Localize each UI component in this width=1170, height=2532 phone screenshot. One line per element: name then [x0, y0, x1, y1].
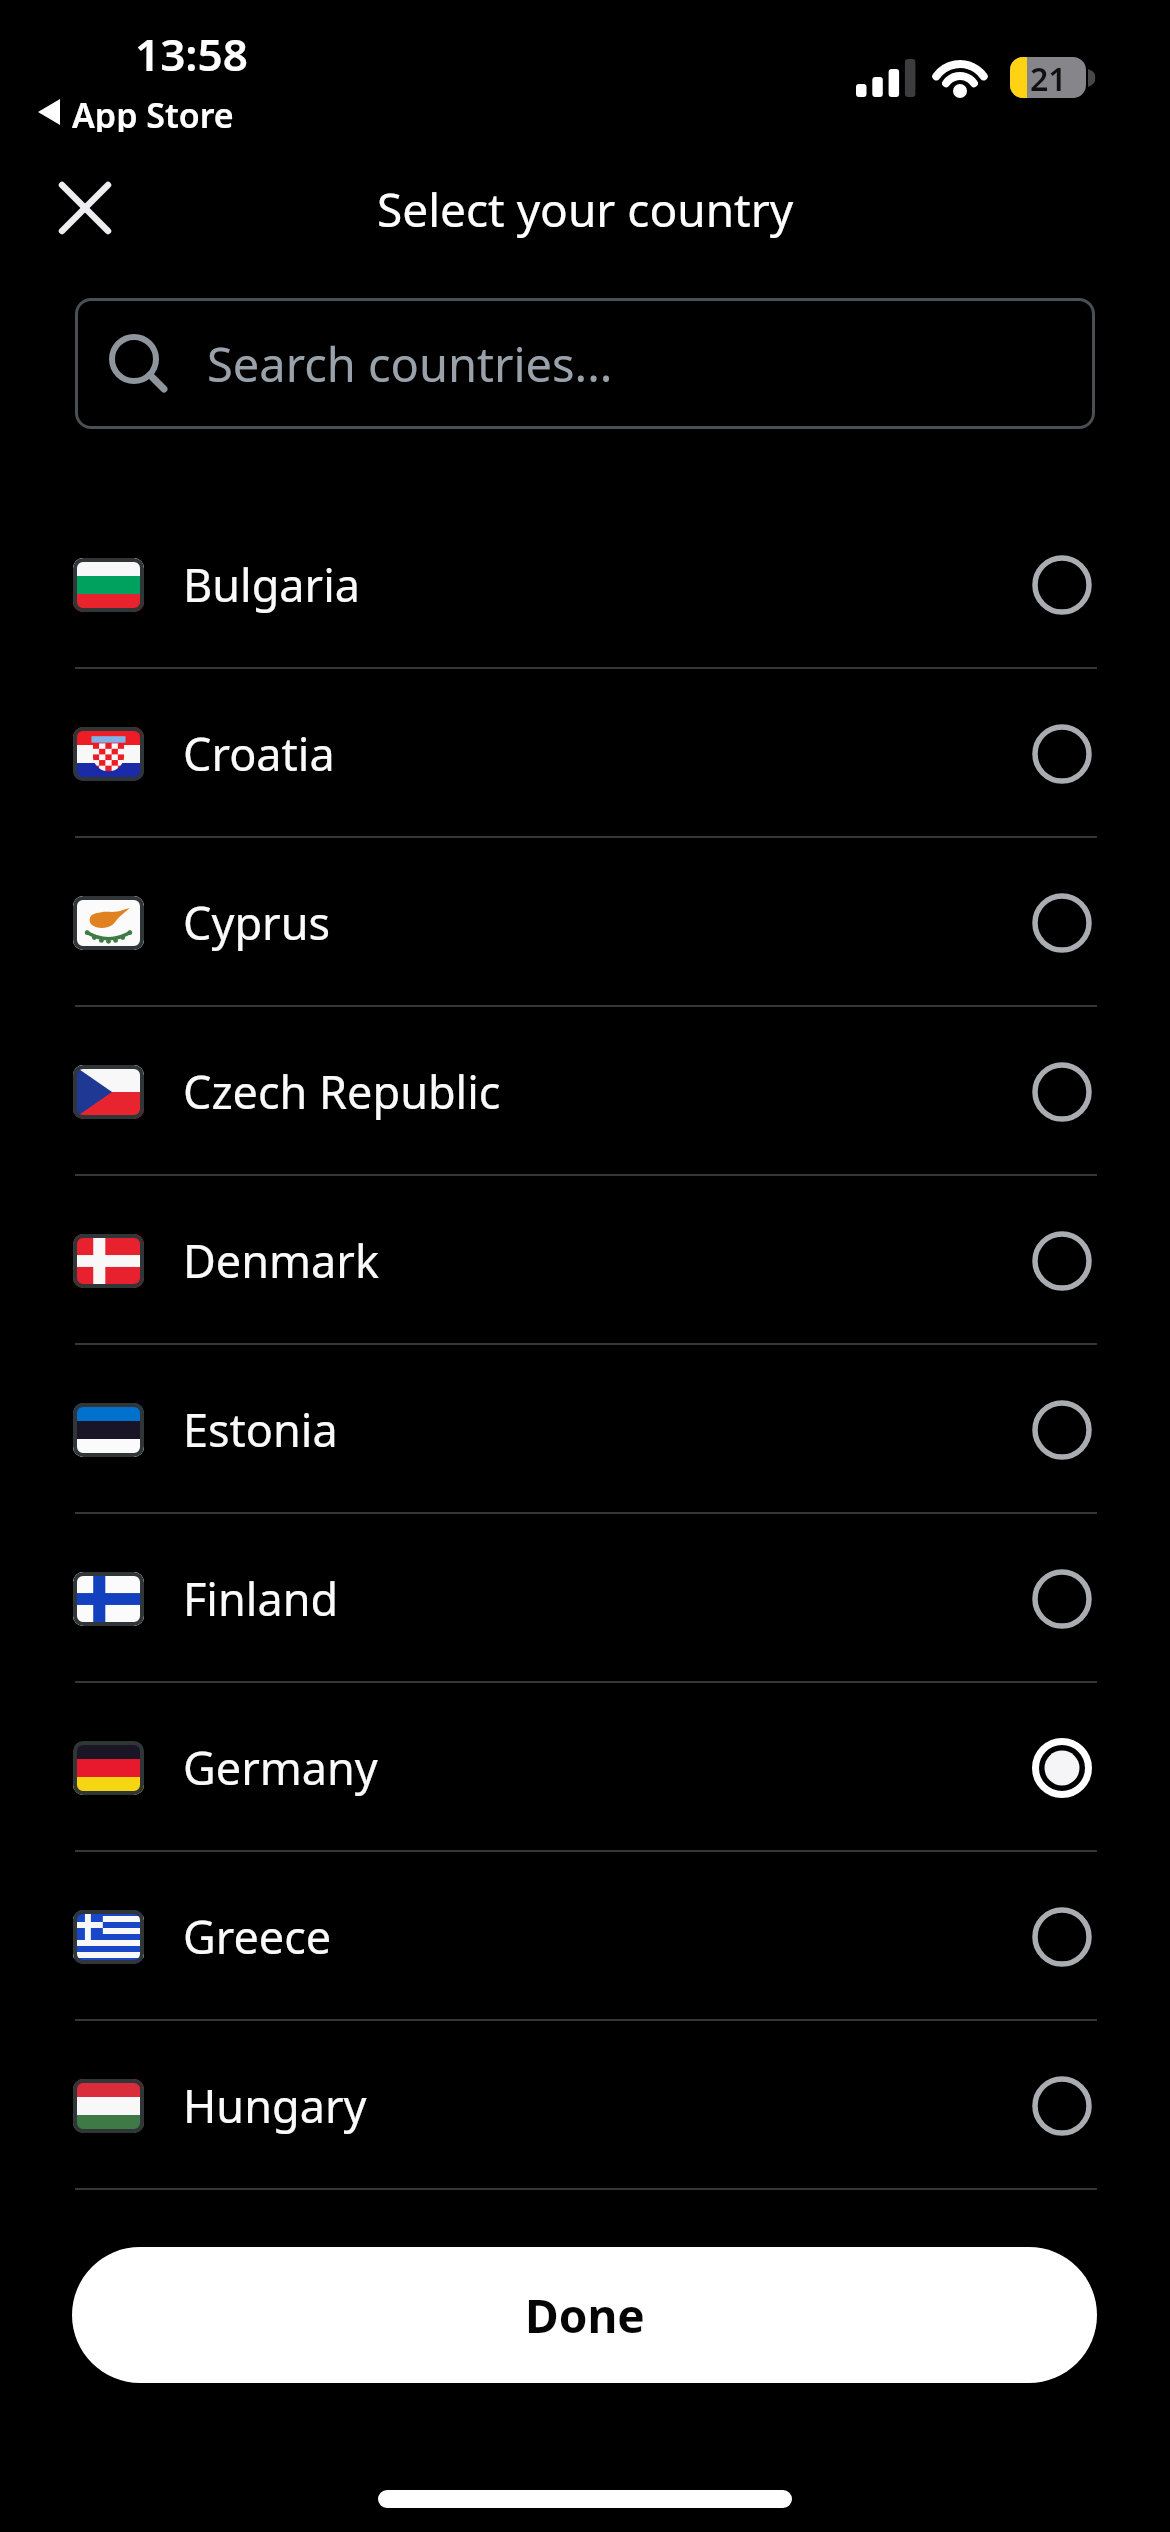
button[interactable]: Germany [0, 1683, 1170, 1852]
button[interactable]: Denmark [0, 1176, 1170, 1345]
button[interactable]: Hungary [0, 2021, 1170, 2190]
staticText: Denmark [183, 1230, 379, 1291]
button[interactable]: Finland [0, 1514, 1170, 1683]
staticText: Czech Republic [183, 1061, 501, 1122]
button[interactable]: Cyprus [0, 838, 1170, 1007]
button[interactable]: Czech Republic [0, 1007, 1170, 1176]
staticText: Select your country [377, 178, 794, 238]
button[interactable]: Estonia [0, 1345, 1170, 1514]
staticText: Greece [183, 1906, 332, 1967]
staticText: App Store [72, 92, 234, 132]
staticText: Done [525, 2284, 645, 2347]
button[interactable]: Done [72, 2247, 1097, 2383]
button[interactable]: Search countries... [75, 298, 1095, 429]
staticText: Finland [183, 1568, 339, 1629]
button[interactable]: Croatia [0, 669, 1170, 838]
button[interactable] [45, 168, 125, 248]
staticText: Cyprus [183, 892, 331, 953]
button[interactable]: Bulgaria [0, 500, 1170, 669]
staticText: Bulgaria [183, 554, 361, 615]
staticText: Hungary [183, 2075, 367, 2136]
staticText: 21 [1030, 57, 1067, 98]
staticText: Search countries... [207, 332, 613, 396]
staticText: Germany [183, 1737, 378, 1798]
button[interactable]: Greece [0, 1852, 1170, 2021]
staticText: 13:58 [135, 24, 248, 76]
staticText: Estonia [183, 1399, 338, 1460]
staticText: Croatia [183, 723, 335, 784]
